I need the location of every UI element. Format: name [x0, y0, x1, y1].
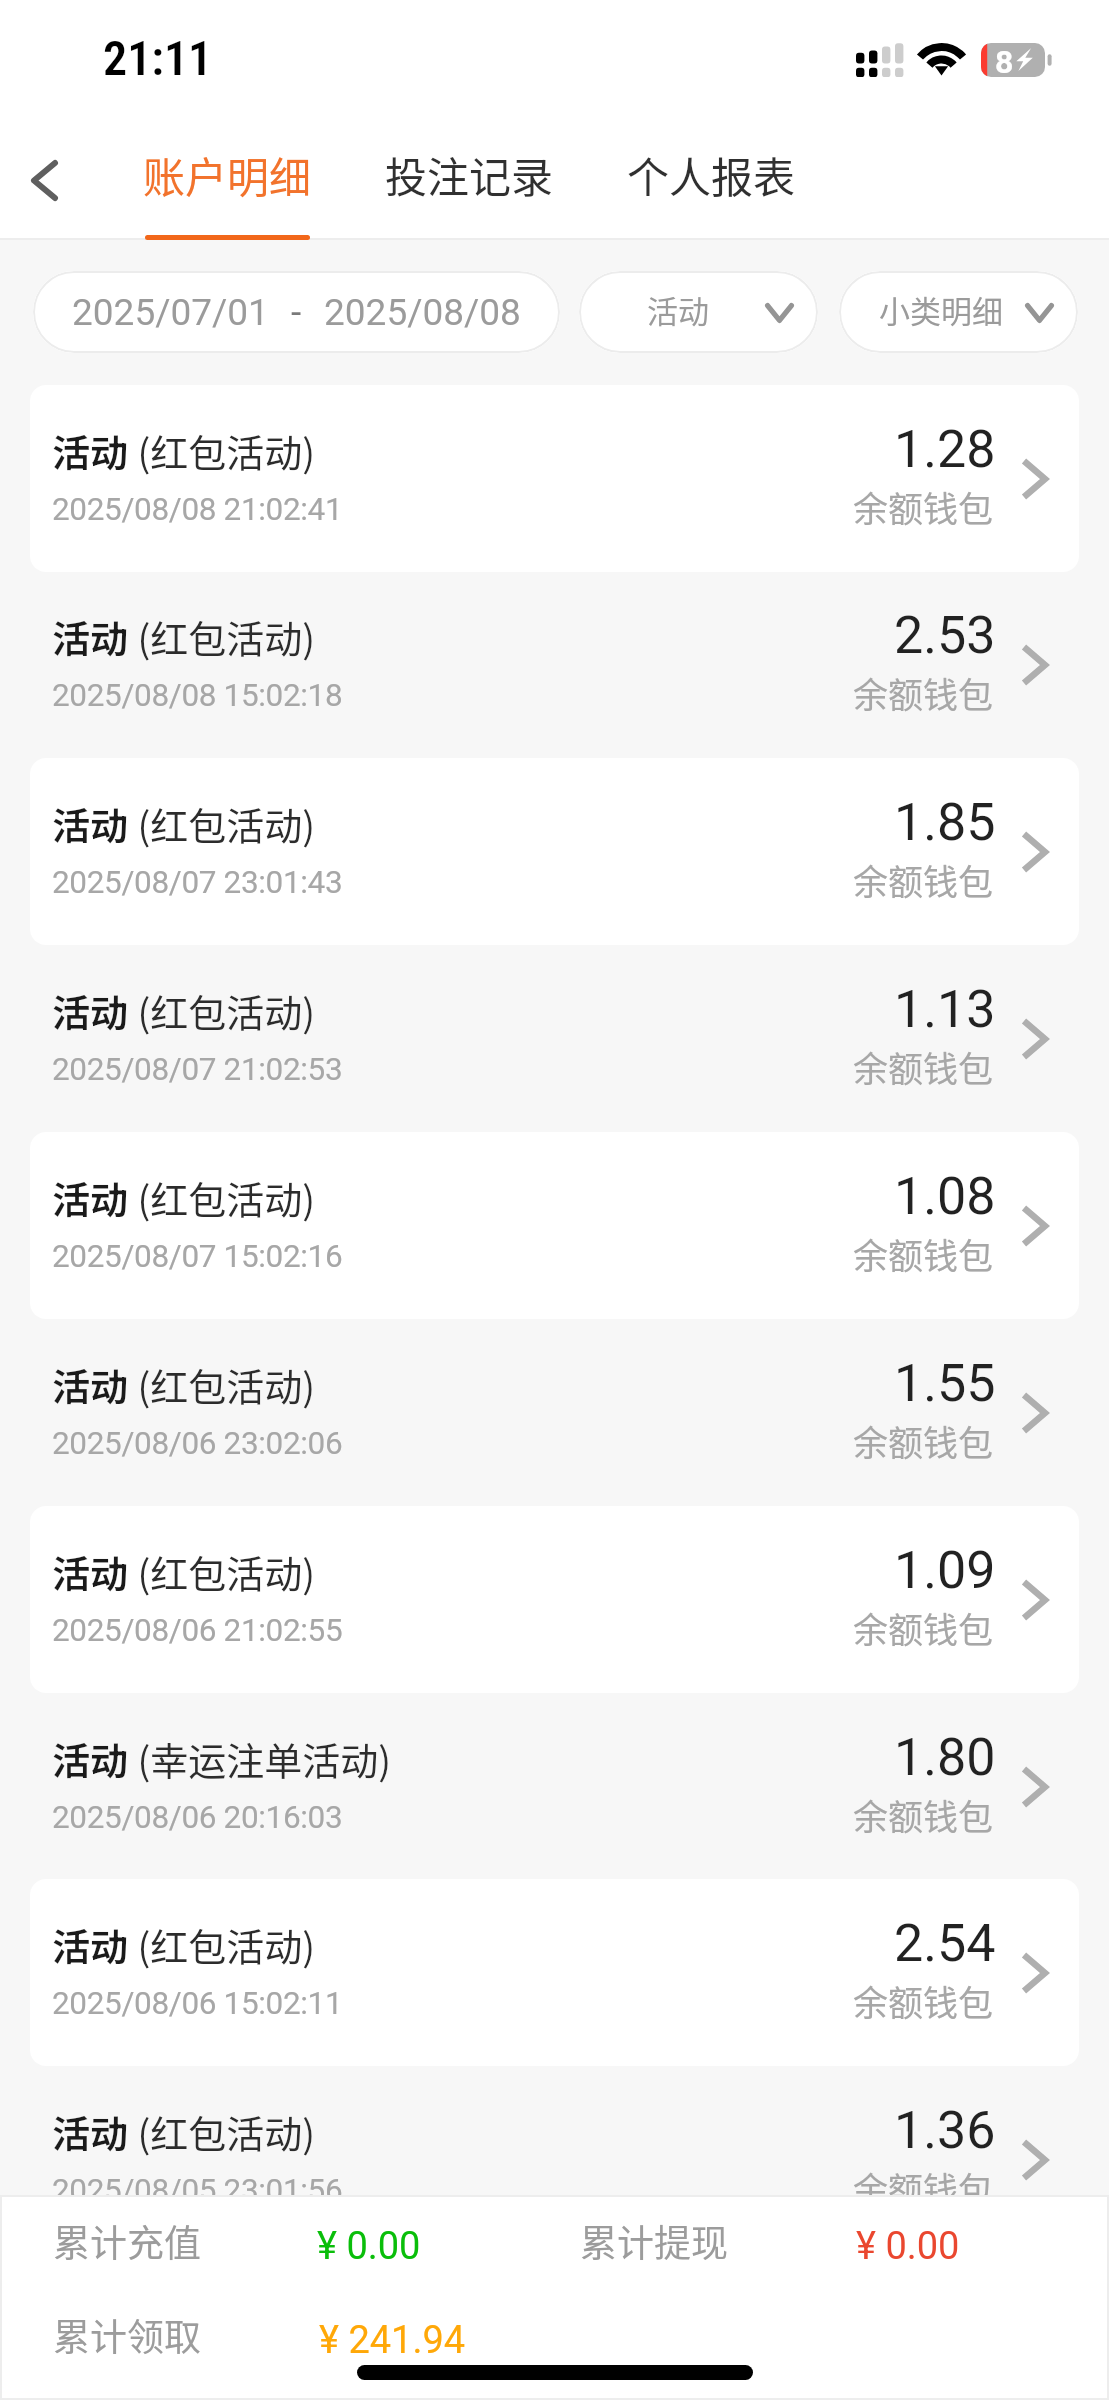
staticText: 余额钱包: [853, 1602, 994, 1653]
staticText: 余额钱包: [853, 1415, 994, 1466]
staticText: 21:11: [103, 30, 213, 86]
staticText: (红包活动): [129, 1170, 316, 1225]
staticText: 余额钱包: [853, 481, 994, 532]
staticText: 余额钱包: [853, 1041, 994, 1092]
button[interactable]: 账户明细: [123, 110, 332, 238]
button[interactable]: 活动: [30, 385, 1079, 572]
button[interactable]: 活动: [30, 1693, 1079, 1880]
staticText: 活动: [52, 609, 129, 664]
staticText: 1.36: [894, 2100, 996, 2161]
staticText: 2025/08/06 21:02:55: [52, 1612, 343, 1649]
staticText: 活动: [52, 2104, 129, 2159]
staticText: 活动: [647, 287, 709, 332]
staticText: 1.28: [894, 419, 996, 480]
staticText: (红包活动): [129, 609, 316, 664]
staticText: 余额钱包: [853, 667, 994, 718]
staticText: (红包活动): [129, 423, 316, 478]
staticText: 2025/08/08: [324, 291, 521, 334]
staticText: (红包活动): [129, 2104, 316, 2159]
staticText: (红包活动): [129, 1917, 316, 1972]
staticText: 1.08: [894, 1166, 996, 1227]
staticText: ¥ 0.00: [856, 2224, 960, 2269]
staticText: 小类明细: [879, 287, 1003, 332]
button[interactable]: 个人报表: [610, 110, 812, 238]
staticText: ¥ 0.00: [317, 2224, 421, 2269]
staticText: 2025/08/08 21:02:41: [52, 491, 343, 528]
staticText: 账户明细: [143, 144, 312, 205]
staticText: 2025/08/07 23:01:43: [52, 864, 343, 901]
staticText: 投注记录: [385, 144, 554, 205]
staticText: 累计充值: [53, 2214, 201, 2268]
staticText: 活动: [52, 1917, 129, 1972]
staticText: 累计提现: [580, 2214, 728, 2268]
staticText: 累计领取: [53, 2308, 201, 2362]
staticText: 余额钱包: [853, 1975, 994, 2026]
staticText: (红包活动): [129, 1357, 316, 1412]
button[interactable]: 活动: [30, 1879, 1079, 2066]
button[interactable]: 小类明细: [839, 271, 1078, 353]
button[interactable]: 活动: [30, 1506, 1079, 1693]
staticText: 活动: [52, 1731, 129, 1786]
staticText: 活动: [52, 423, 129, 478]
button[interactable]: 活动: [30, 2066, 1079, 2253]
staticText: 活动: [52, 796, 129, 851]
button[interactable]: 投注记录: [364, 110, 574, 238]
staticText: 1.80: [894, 1727, 996, 1788]
staticText: (红包活动): [129, 1544, 316, 1599]
staticText: -: [291, 291, 302, 334]
button[interactable]: 2025/07/01: [33, 271, 560, 353]
staticText: (幸运注单活动): [129, 1731, 392, 1786]
staticText: 个人报表: [627, 144, 796, 205]
staticText: 8: [995, 43, 1014, 79]
staticText: 余额钱包: [853, 1228, 994, 1279]
staticText: 余额钱包: [853, 854, 994, 905]
staticText: 2025/08/06 20:16:03: [52, 1799, 343, 1836]
staticText: 活动: [52, 1544, 129, 1599]
staticText: 活动: [52, 983, 129, 1038]
button[interactable]: 活动: [30, 1132, 1079, 1319]
staticText: 1.85: [894, 792, 996, 853]
staticText: 2025/08/06 23:02:06: [52, 1425, 343, 1462]
staticText: 2.54: [894, 1913, 996, 1974]
staticText: 2.53: [894, 605, 996, 666]
button[interactable]: 活动: [30, 1319, 1079, 1506]
staticText: 2025/08/05 23:01:56: [52, 2172, 343, 2209]
staticText: 活动: [52, 1357, 129, 1412]
staticText: 2025/07/01: [72, 291, 269, 334]
staticText: 2025/08/08 15:02:18: [52, 677, 343, 714]
staticText: 2025/08/06 15:02:11: [52, 1985, 343, 2022]
staticText: ¥ 241.94: [319, 2318, 466, 2363]
button[interactable]: 活动: [30, 571, 1079, 758]
staticText: 2025/08/07 15:02:16: [52, 1238, 343, 1275]
button[interactable]: 活动: [579, 271, 818, 353]
staticText: 1.55: [894, 1353, 996, 1414]
button[interactable]: 活动: [30, 758, 1079, 945]
staticText: (红包活动): [129, 983, 316, 1038]
staticText: (红包活动): [129, 796, 316, 851]
staticText: 余额钱包: [853, 1789, 994, 1840]
staticText: 余额钱包: [853, 2162, 994, 2213]
staticText: 2025/08/07 21:02:53: [52, 1051, 343, 1088]
staticText: 1.09: [894, 1540, 996, 1601]
staticText: 活动: [52, 1170, 129, 1225]
button[interactable]: 活动: [30, 945, 1079, 1132]
staticText: 1.13: [894, 979, 996, 1040]
button[interactable]: Back: [7, 110, 79, 238]
